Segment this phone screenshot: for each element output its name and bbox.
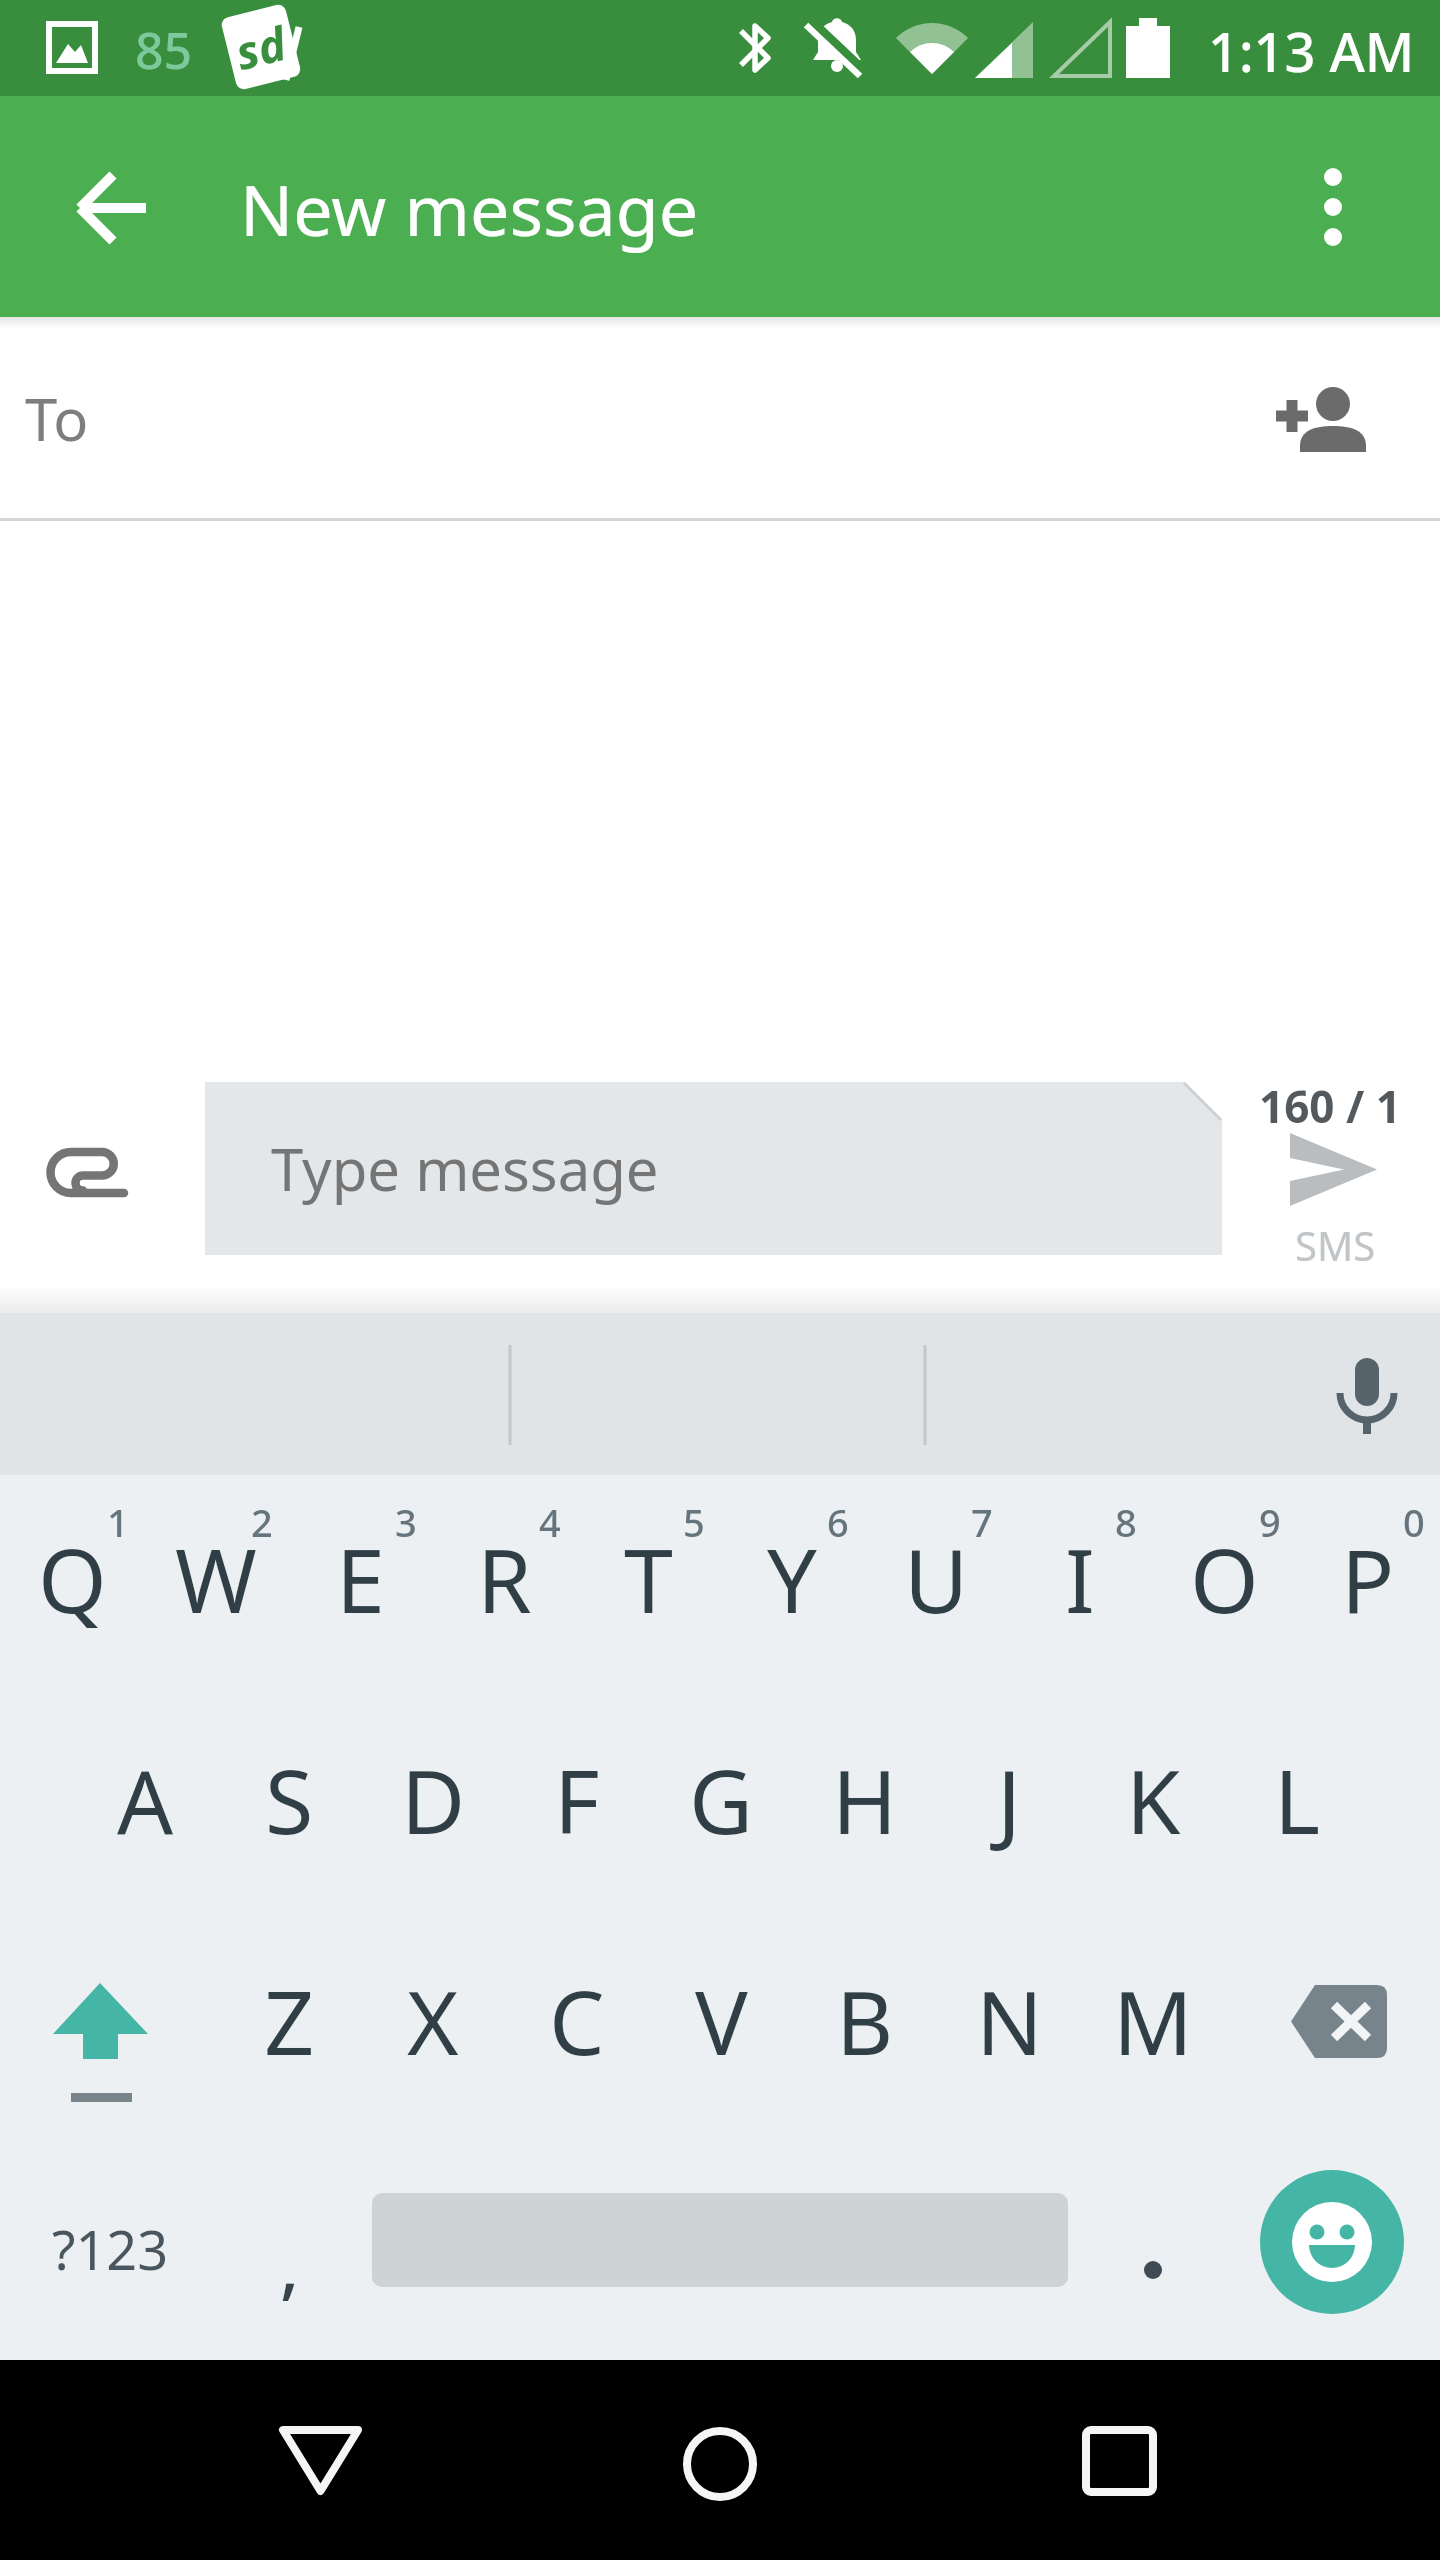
staticText: G [689, 1740, 754, 1860]
button[interactable]: B [793, 1910, 937, 2131]
button[interactable]: A [73, 1689, 217, 1910]
button[interactable]: To [0, 317, 1440, 519]
staticText: F [554, 1740, 600, 1860]
staticText: X [407, 1961, 459, 2081]
staticText: 1 [107, 1496, 129, 1548]
staticText: Z [264, 1961, 315, 2081]
button[interactable]: Q [0, 1468, 144, 1689]
button[interactable]: O [1152, 1468, 1296, 1689]
button[interactable] [660, 2404, 780, 2524]
staticText: S [265, 1740, 314, 1860]
button[interactable]: N [937, 1910, 1081, 2131]
staticText: V [695, 1961, 748, 2081]
button[interactable] [1100, 2138, 1210, 2359]
staticText: , [280, 2217, 300, 2312]
button[interactable]: P [1296, 1468, 1440, 1689]
staticText: Q [38, 1519, 107, 1639]
button[interactable] [260, 2400, 380, 2520]
staticText: 6 [827, 1496, 849, 1548]
button[interactable]: ?123 [0, 2138, 220, 2359]
button[interactable] [1260, 2170, 1404, 2314]
staticText: B [836, 1961, 894, 2081]
staticText: M [1113, 1961, 1193, 2081]
staticText: U [904, 1519, 969, 1639]
button[interactable]: E [288, 1468, 432, 1689]
staticText: 0 [1403, 1496, 1425, 1548]
button[interactable]: , [235, 2138, 345, 2359]
staticText: T [624, 1519, 673, 1639]
staticText: W [175, 1519, 257, 1639]
staticText: R [477, 1519, 532, 1639]
staticText: To [25, 379, 89, 458]
button[interactable] [14, 1917, 186, 2138]
button[interactable]: R [432, 1468, 576, 1689]
staticText: J [997, 1740, 1022, 1860]
staticText: 1:13 AM [1208, 14, 1415, 84]
button[interactable]: S [217, 1689, 361, 1910]
staticText: P [1341, 1519, 1395, 1639]
button[interactable] [1260, 1917, 1426, 2138]
button[interactable] [26, 1130, 142, 1215]
button[interactable]: Type message [205, 1082, 1222, 1255]
button[interactable]: V [649, 1910, 793, 2131]
button[interactable] [1286, 130, 1382, 290]
staticText: Type message [271, 1129, 659, 1208]
staticText: N [976, 1961, 1043, 2081]
staticText: K [1126, 1740, 1181, 1860]
staticText: C [549, 1961, 605, 2081]
button[interactable] [1320, 1335, 1415, 1445]
staticText: D [401, 1740, 466, 1860]
staticText: 9 [1259, 1496, 1281, 1548]
button[interactable]: W [144, 1468, 288, 1689]
button[interactable] [1060, 2404, 1180, 2524]
staticText: H [832, 1740, 898, 1860]
staticText: I [1065, 1519, 1095, 1639]
staticText: ?123 [52, 2212, 169, 2286]
button[interactable]: H [793, 1689, 937, 1910]
button[interactable]: F [505, 1689, 649, 1910]
button[interactable]: G [649, 1689, 793, 1910]
button[interactable]: Y [720, 1468, 864, 1689]
button[interactable]: K [1081, 1689, 1225, 1910]
button[interactable]: J [937, 1689, 1081, 1910]
button[interactable] [56, 150, 172, 266]
staticText: A [117, 1740, 174, 1860]
button[interactable]: M [1081, 1910, 1225, 2131]
staticText: 4 [539, 1496, 561, 1548]
staticText: L [1274, 1740, 1321, 1860]
staticText: 3 [395, 1496, 417, 1548]
staticText: sd [229, 11, 293, 84]
staticText: E [336, 1519, 385, 1639]
button[interactable] [1275, 1118, 1395, 1222]
staticText: 7 [971, 1496, 993, 1548]
staticText: 5 [683, 1496, 705, 1548]
staticText: 85 [135, 16, 193, 80]
button[interactable]: X [361, 1910, 505, 2131]
staticText: SMS [1295, 1218, 1376, 1266]
button[interactable]: I [1008, 1468, 1152, 1689]
staticText: 8 [1115, 1496, 1137, 1548]
button[interactable]: C [505, 1910, 649, 2131]
staticText: 2 [251, 1496, 273, 1548]
button[interactable] [1245, 360, 1395, 480]
staticText: O [1190, 1519, 1259, 1639]
button[interactable]: T [576, 1468, 720, 1689]
button[interactable]: Z [217, 1910, 361, 2131]
button[interactable]: D [361, 1689, 505, 1910]
button[interactable]: U [864, 1468, 1008, 1689]
staticText: 160 / 1 [1259, 1076, 1401, 1124]
staticText: Y [767, 1519, 817, 1639]
button[interactable]: L [1225, 1689, 1369, 1910]
staticText: New message [240, 161, 699, 256]
